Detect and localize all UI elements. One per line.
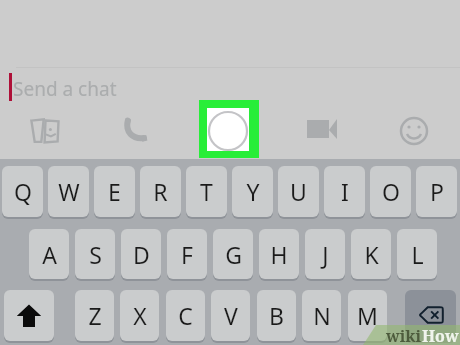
staticText: A xyxy=(42,239,57,270)
staticText: F xyxy=(181,239,193,270)
staticText: L xyxy=(411,239,424,270)
button[interactable]: Backspace xyxy=(405,290,456,341)
button[interactable]: I xyxy=(324,166,365,217)
button[interactable]: T xyxy=(186,166,227,217)
staticText: K xyxy=(364,239,379,270)
button[interactable]: F xyxy=(167,229,207,279)
button[interactable]: Y xyxy=(232,166,273,217)
staticText: D xyxy=(133,239,150,270)
button[interactable]: M xyxy=(348,290,387,341)
staticText: O xyxy=(382,176,400,207)
staticText: U xyxy=(290,176,307,207)
staticText: J xyxy=(322,239,329,270)
staticText: R xyxy=(153,176,168,207)
staticText: W xyxy=(58,176,80,207)
button[interactable]: Snaps xyxy=(20,105,70,155)
staticText: C xyxy=(178,300,193,331)
button[interactable]: K xyxy=(351,229,391,279)
button[interactable]: Video call xyxy=(299,105,349,155)
button[interactable]: A xyxy=(29,229,69,279)
staticText: V xyxy=(224,300,238,331)
staticText: B xyxy=(269,300,284,331)
button[interactable]: C xyxy=(166,290,205,341)
staticText: wiki xyxy=(386,325,422,345)
button[interactable]: V xyxy=(211,290,250,341)
button[interactable]: Q xyxy=(2,166,43,217)
staticText: G xyxy=(225,239,242,270)
button[interactable]: E xyxy=(94,166,135,217)
button[interactable]: Z xyxy=(75,290,114,341)
button[interactable]: Camera xyxy=(199,100,259,158)
staticText: Q xyxy=(14,176,32,207)
staticText: H xyxy=(270,239,288,270)
button[interactable]: H xyxy=(259,229,299,279)
button[interactable]: R xyxy=(140,166,181,217)
button[interactable]: Shift xyxy=(4,290,54,341)
staticText: M xyxy=(357,300,378,331)
staticText: E xyxy=(108,176,121,207)
button[interactable]: J xyxy=(305,229,345,279)
button[interactable]: Call xyxy=(112,105,162,155)
button[interactable]: L xyxy=(397,229,437,279)
staticText: Y xyxy=(246,176,260,207)
button[interactable]: U xyxy=(278,166,319,217)
button[interactable]: G xyxy=(213,229,253,279)
button[interactable]: X xyxy=(120,290,159,341)
button[interactable]: S xyxy=(75,229,115,279)
staticText: P xyxy=(430,176,444,207)
staticText: X xyxy=(133,300,147,331)
button[interactable]: Stickers xyxy=(389,105,439,155)
staticText: I xyxy=(341,176,349,207)
staticText: T xyxy=(200,176,213,207)
button[interactable]: W xyxy=(48,166,89,217)
button[interactable]: N xyxy=(302,290,341,341)
button[interactable]: B xyxy=(257,290,296,341)
staticText: How xyxy=(422,325,459,345)
staticText: Z xyxy=(88,300,102,331)
staticText: Send a chat xyxy=(13,76,117,102)
button[interactable]: P xyxy=(416,166,457,217)
staticText: S xyxy=(89,239,102,270)
staticText: N xyxy=(313,300,331,331)
button[interactable]: O xyxy=(370,166,411,217)
button[interactable]: D xyxy=(121,229,161,279)
